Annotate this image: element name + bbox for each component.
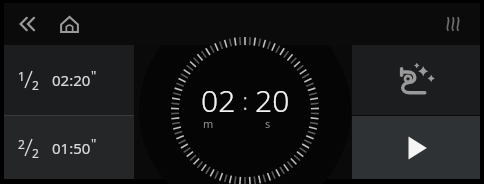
button[interactable]: Start: [352, 116, 480, 179]
staticText: 20: [255, 80, 290, 121]
staticText: :: [236, 84, 255, 117]
button[interactable]: 1: [4, 45, 134, 115]
staticText: s: [265, 116, 271, 131]
staticText: 2: [32, 145, 39, 161]
button[interactable]: Home: [52, 7, 86, 41]
staticText: ": [91, 134, 97, 152]
staticText: ": [91, 66, 97, 84]
button[interactable]: 2: [4, 116, 134, 179]
staticText: 1: [18, 68, 25, 84]
button[interactable]: Back: [12, 7, 46, 41]
staticText: 02: [201, 80, 236, 121]
staticText: 01:50: [52, 138, 91, 158]
button[interactable]: Steam active: [438, 9, 468, 39]
staticText: m: [203, 116, 214, 131]
staticText: 2: [18, 136, 25, 152]
staticText: 02:20: [52, 70, 91, 90]
staticText: 2: [32, 77, 39, 93]
button[interactable]: Steam clean program: [352, 45, 480, 115]
